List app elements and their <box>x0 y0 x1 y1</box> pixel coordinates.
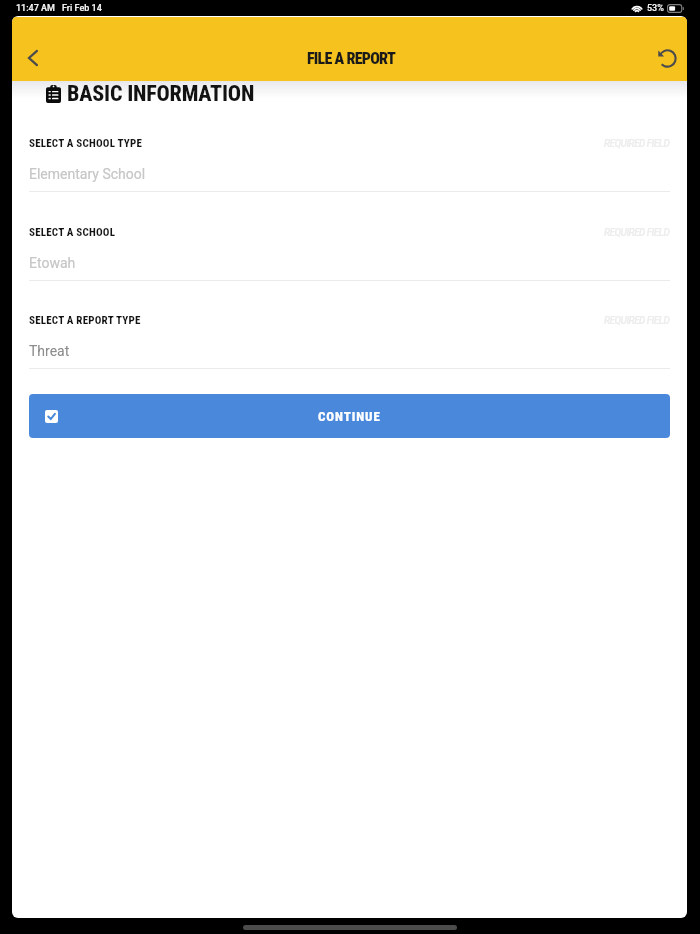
button[interactable]: CONTINUE <box>29 394 670 438</box>
button[interactable]: Reset <box>646 37 687 78</box>
staticText: FILE A REPORT <box>307 49 396 68</box>
staticText: CONTINUE <box>318 409 381 424</box>
staticText: REQUIRED FIELD <box>604 227 670 239</box>
staticText: SELECT A SCHOOL <box>29 226 116 239</box>
staticText: 11:47 AM <box>16 3 55 14</box>
staticText: 53% <box>647 3 664 14</box>
button[interactable]: SELECT A SCHOOL <box>29 226 670 281</box>
button[interactable]: SELECT A REPORT TYPE <box>29 314 670 369</box>
staticText: BASIC INFORMATION <box>67 81 255 107</box>
staticText: Threat <box>29 343 70 359</box>
staticText: Etowah <box>29 255 76 271</box>
staticText: Elementary School <box>29 166 146 182</box>
staticText: REQUIRED FIELD <box>604 138 670 150</box>
staticText: SELECT A REPORT TYPE <box>29 314 141 327</box>
staticText: SELECT A SCHOOL TYPE <box>29 137 143 150</box>
staticText: Fri Feb 14 <box>62 3 102 14</box>
staticText: REQUIRED FIELD <box>604 315 670 327</box>
button[interactable]: SELECT A SCHOOL TYPE <box>29 137 670 192</box>
button[interactable]: Back <box>12 37 53 78</box>
